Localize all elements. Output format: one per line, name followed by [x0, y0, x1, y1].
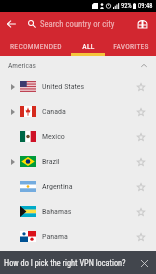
staticText: 09:48	[138, 2, 153, 10]
button[interactable]: Back	[0, 12, 22, 36]
staticText: How do I pick the right VPN location?	[4, 258, 126, 268]
staticText: RECOMMENDED	[10, 42, 62, 51]
button[interactable]: RECOMMENDED	[0, 36, 71, 56]
button[interactable]: Favorite	[133, 149, 149, 174]
staticText: Bahamas	[42, 207, 72, 216]
staticText: 92%	[121, 2, 132, 10]
button[interactable]: Favorite	[133, 124, 149, 149]
button[interactable]: Argentina	[0, 174, 156, 199]
staticText: Search country or city	[40, 19, 115, 29]
staticText: ALL	[82, 42, 95, 51]
staticText: Brazil	[42, 157, 60, 166]
button[interactable]: Canada	[0, 99, 156, 124]
button[interactable]: Favorite	[133, 199, 149, 224]
button[interactable]: Keyboard	[132, 12, 152, 36]
button[interactable]: United States	[0, 74, 156, 99]
staticText: Argentina	[42, 182, 73, 191]
button[interactable]: Favorite	[133, 74, 149, 99]
staticText: Canada	[42, 107, 66, 116]
button[interactable]: Close	[136, 255, 152, 271]
staticText: Panama	[42, 232, 68, 241]
button[interactable]: Favorite	[133, 174, 149, 199]
button[interactable]: FAVORITES	[105, 36, 156, 56]
staticText: FAVORITES	[113, 42, 149, 51]
button[interactable]: Favorite	[133, 99, 149, 124]
button[interactable]: Favorite	[133, 224, 149, 249]
staticText: Americas	[8, 61, 36, 70]
button[interactable]: Mexico	[0, 124, 156, 149]
button[interactable]: Bahamas	[0, 199, 156, 224]
staticText: Mexico	[42, 132, 65, 141]
staticText: United States	[42, 82, 85, 91]
button[interactable]: ALL	[71, 36, 105, 56]
button[interactable]: Panama	[0, 224, 156, 249]
button[interactable]: Brazil	[0, 149, 156, 174]
